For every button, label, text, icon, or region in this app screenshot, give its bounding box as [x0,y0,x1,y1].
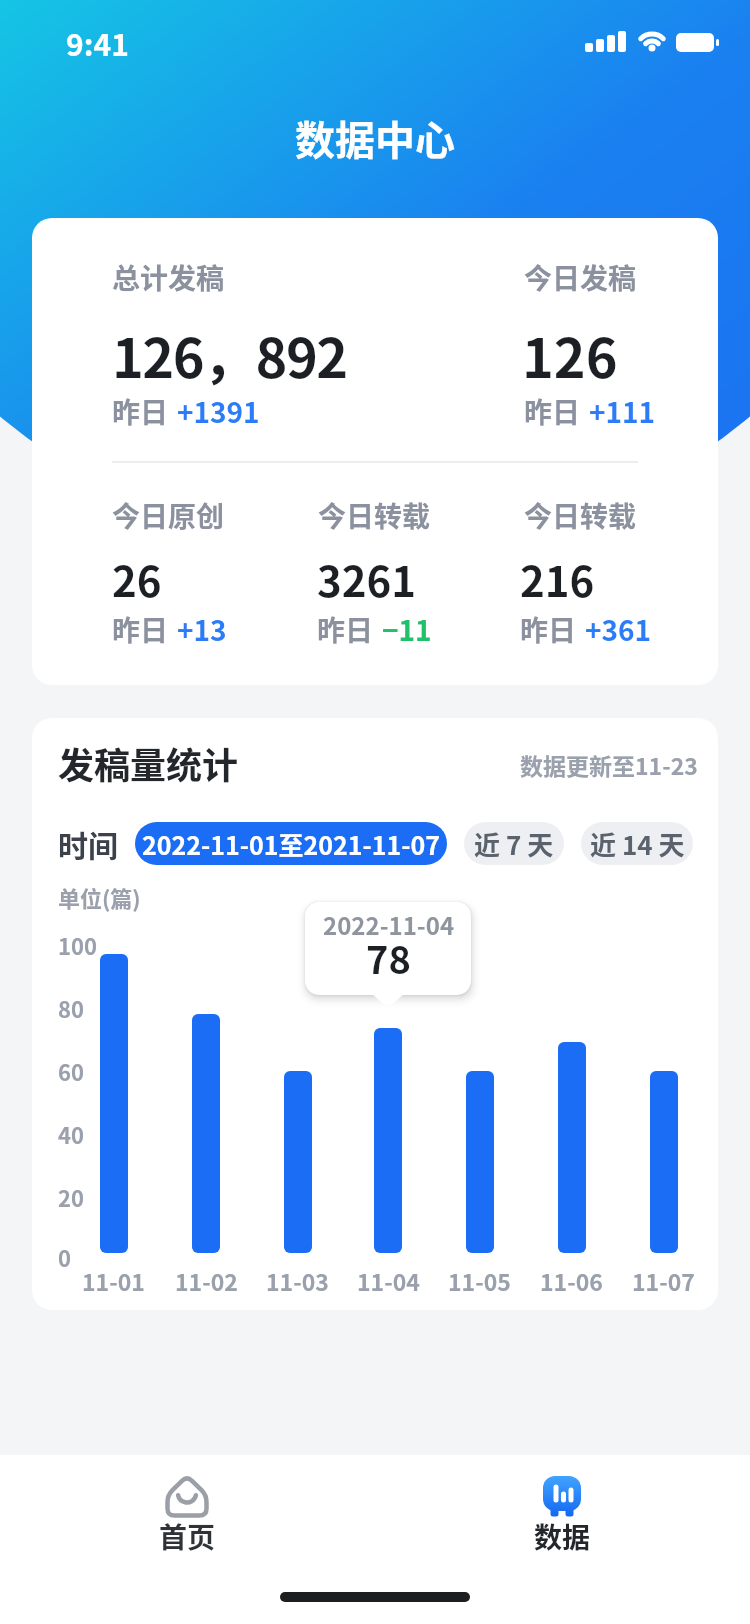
staticText: 26 [112,548,162,609]
staticText: 0 [58,1241,71,1273]
staticText: 昨日 [524,391,581,432]
staticText: 11-07 [632,1264,695,1297]
staticText: 11-01 [82,1264,145,1297]
staticText: 3261 [317,548,417,609]
staticText: +361 [585,609,652,650]
staticText: 时间 [58,822,118,865]
staticText: 昨日 [112,609,169,650]
staticText: 2022-11-04 [323,907,455,942]
staticText: 11-03 [266,1264,329,1297]
button[interactable] [512,1465,612,1560]
button[interactable]: 2022-11-01至2021-11-07 [135,822,447,865]
staticText: 11-04 [357,1264,420,1297]
staticText: 近 7 天 [474,825,554,863]
staticText: 80 [58,992,84,1024]
button[interactable]: 近 14 天 [581,822,693,865]
staticText: +111 [589,391,656,432]
staticText: 216 [520,548,595,609]
staticText: 今日发稿 [524,257,637,298]
staticText: 总计发稿 [112,257,225,298]
staticText: −11 [382,609,432,650]
staticText: 今日转载 [318,495,431,536]
staticText: 11-05 [448,1264,511,1297]
staticText: 2022-11-01至2021-11-07 [142,826,441,862]
staticText: 数据更新至11-23 [520,748,698,781]
button[interactable]: 近 7 天 [464,822,564,865]
staticText: 40 [58,1118,84,1150]
staticText: 20 [58,1181,84,1213]
staticText: 近 14 天 [590,825,685,863]
staticText: 126 [522,315,618,393]
staticText: 发稿量统计 [58,737,239,789]
staticText: 126，892 [112,315,347,393]
staticText: 100 [58,929,97,961]
staticText: 数据 [534,1516,591,1557]
staticText: +13 [177,609,227,650]
staticText: 60 [58,1055,84,1087]
button[interactable] [137,1465,237,1560]
staticText: 今日转载 [524,495,637,536]
staticText: 数据中心 [295,109,455,167]
staticText: 11-02 [175,1264,238,1297]
staticText: +1391 [177,391,260,432]
staticText: 昨日 [520,609,577,650]
staticText: 9:41 [66,21,129,64]
staticText: 首页 [159,1516,216,1557]
staticText: 78 [366,930,411,985]
staticText: 11-06 [540,1264,603,1297]
staticText: 昨日 [112,391,169,432]
staticText: 昨日 [317,609,374,650]
staticText: 单位(篇) [58,881,141,913]
staticText: 今日原创 [112,495,225,536]
